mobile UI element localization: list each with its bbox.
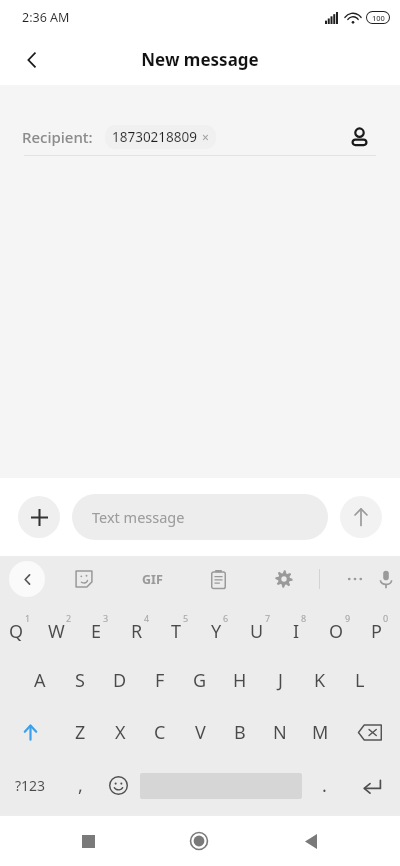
button[interactable]: I [280, 602, 320, 654]
staticText: Q [9, 619, 24, 644]
button[interactable]: Shift [0, 706, 60, 758]
staticText: X [115, 720, 126, 745]
button[interactable]: V [180, 706, 220, 758]
button[interactable]: Y [200, 602, 240, 654]
staticText: 0 [383, 612, 389, 624]
button[interactable]: M [300, 706, 340, 758]
button[interactable]: O [320, 602, 360, 654]
button[interactable]: B [220, 706, 260, 758]
button[interactable]: GIF [135, 562, 169, 596]
button[interactable]: Back [288, 818, 334, 864]
button[interactable]: H [220, 654, 260, 706]
button[interactable]: Stickers [67, 562, 101, 596]
staticText: S [75, 668, 85, 693]
staticText: Z [75, 720, 86, 745]
button[interactable]: Enter [343, 758, 400, 813]
staticText: 5 [183, 612, 189, 624]
button[interactable]: D [100, 654, 140, 706]
button[interactable]: S [60, 654, 100, 706]
button[interactable]: J [260, 654, 300, 706]
staticText: GIF [142, 571, 163, 588]
button[interactable]: P [360, 602, 400, 654]
button[interactable]: Voice input [372, 562, 400, 596]
staticText: 4 [144, 612, 150, 624]
button[interactable]: L [340, 654, 380, 706]
button[interactable]: N [260, 706, 300, 758]
staticText: T [171, 619, 182, 644]
staticText: W [48, 619, 65, 644]
staticText: F [155, 668, 165, 693]
button[interactable]: Settings [267, 562, 301, 596]
staticText: Text message [92, 507, 185, 527]
staticText: R [131, 619, 143, 644]
staticText: H [233, 668, 247, 693]
button[interactable]: Attach [18, 496, 60, 538]
staticText: . [322, 773, 327, 798]
button[interactable]: Home [176, 818, 222, 864]
button[interactable]: T [160, 602, 200, 654]
staticText: 6 [223, 612, 229, 624]
staticText: 100 [372, 13, 385, 23]
staticText: 1 [25, 612, 31, 624]
staticText: New message [141, 48, 259, 71]
button[interactable]: More [338, 562, 372, 596]
button[interactable]: U [240, 602, 280, 654]
staticText: E [91, 619, 102, 644]
button[interactable]: X [100, 706, 140, 758]
button[interactable]: Emoji [99, 758, 137, 813]
staticText: M [312, 720, 329, 745]
staticText: A [34, 668, 46, 693]
button[interactable]: G [180, 654, 220, 706]
staticText: I [293, 619, 300, 644]
staticText: ?123 [15, 776, 46, 795]
staticText: 2 [66, 612, 72, 624]
button[interactable]: Clipboard [201, 562, 235, 596]
staticText: N [273, 720, 287, 745]
button[interactable]: K [300, 654, 340, 706]
button[interactable]: . [305, 758, 343, 813]
staticText: Recipient: [22, 127, 93, 147]
staticText: B [234, 720, 246, 745]
button[interactable]: Backspace [340, 706, 400, 758]
staticText: J [278, 668, 283, 693]
button[interactable]: R [120, 602, 160, 654]
staticText: G [193, 668, 207, 693]
button[interactable]: Recents [65, 818, 111, 864]
button[interactable]: C [140, 706, 180, 758]
button[interactable]: F [140, 654, 180, 706]
button[interactable]: Add contact [340, 119, 378, 155]
button[interactable]: A [20, 654, 60, 706]
button[interactable]: Q [0, 602, 40, 654]
button[interactable]: Send [340, 496, 382, 538]
staticText: 9 [345, 612, 351, 624]
staticText: 7 [265, 612, 271, 624]
button[interactable]: Back [10, 38, 54, 82]
staticText: 3 [103, 612, 109, 624]
button[interactable]: E [80, 602, 120, 654]
staticText: × [202, 129, 209, 145]
staticText: Y [211, 619, 222, 644]
button[interactable]: ?123 [0, 758, 61, 813]
staticText: C [154, 720, 166, 745]
staticText: K [314, 668, 326, 693]
button[interactable]: Collapse toolbar [9, 561, 45, 597]
staticText: 8 [301, 612, 307, 624]
staticText: 2:36 AM [22, 9, 70, 26]
staticText: D [113, 668, 127, 693]
staticText: U [250, 619, 264, 644]
staticText: L [355, 668, 365, 693]
button[interactable]: , [61, 758, 99, 813]
button[interactable]: Text message [72, 494, 328, 540]
staticText: V [195, 720, 206, 745]
staticText: O [329, 619, 344, 644]
staticText: , [78, 773, 83, 798]
staticText: 18730218809 [112, 128, 197, 146]
button[interactable]: Z [60, 706, 100, 758]
button[interactable]: 18730218809 [105, 125, 216, 149]
button[interactable]: W [40, 602, 80, 654]
staticText: P [371, 619, 382, 644]
